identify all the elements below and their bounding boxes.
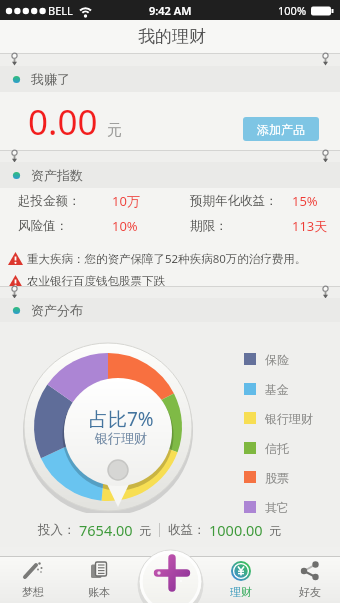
staticText: 好友 xyxy=(299,585,321,599)
staticText: 15% xyxy=(292,192,318,210)
staticText: 重大疾病：您的资产保障了52种疾病80万的治疗费用。 xyxy=(27,251,307,267)
staticText: 期限： xyxy=(190,218,228,234)
staticText: 风险值： xyxy=(18,218,68,234)
staticText: 收益： xyxy=(168,522,206,538)
staticText: 基金 xyxy=(265,382,289,397)
staticText: 0.00 xyxy=(28,98,98,146)
staticText: BELL xyxy=(48,3,73,18)
button[interactable]: 梦想 xyxy=(5,556,61,603)
staticText: 农业银行百度钱包股票下跌 xyxy=(27,274,165,288)
button[interactable]: 好友 xyxy=(282,556,338,603)
staticText: 资产分布 xyxy=(31,302,83,318)
staticText: 我赚了 xyxy=(31,71,70,87)
staticText: 元 xyxy=(269,523,281,538)
staticText: 9:42 AM xyxy=(149,3,192,18)
staticText: 理 xyxy=(230,585,241,599)
staticText: 10万 xyxy=(112,192,140,210)
button[interactable] xyxy=(137,548,203,603)
staticText: 银行理财 xyxy=(95,430,147,446)
staticText: 财 xyxy=(241,585,252,599)
staticText: 113天 xyxy=(292,217,328,235)
staticText: 1000.00 xyxy=(209,520,263,540)
staticText: 预期年化收益： xyxy=(190,193,278,209)
button[interactable]: 理 xyxy=(213,556,269,603)
staticText: 占比7% xyxy=(89,406,154,428)
button[interactable]: 添加产品 xyxy=(243,117,319,141)
staticText: 银行理财 xyxy=(265,411,313,426)
staticText: 100% xyxy=(278,3,307,18)
staticText: 保险 xyxy=(265,352,289,367)
staticText: 股票 xyxy=(265,470,289,485)
staticText: 投入： xyxy=(38,522,76,538)
button[interactable]: 账本 xyxy=(71,556,127,603)
staticText: 元 xyxy=(107,121,122,140)
staticText: 资产指数 xyxy=(31,167,83,183)
staticText: 添加产品 xyxy=(257,122,305,137)
staticText: 7654.00 xyxy=(79,520,133,540)
staticText: 我的理财 xyxy=(138,26,206,47)
staticText: 起投金额： xyxy=(18,193,81,209)
staticText: 10% xyxy=(112,217,138,235)
staticText: 信托 xyxy=(265,441,289,456)
staticText: 元 xyxy=(139,523,151,538)
staticText: 其它 xyxy=(265,500,289,515)
staticText: 梦想 xyxy=(22,585,44,599)
staticText: 账本 xyxy=(88,585,110,599)
